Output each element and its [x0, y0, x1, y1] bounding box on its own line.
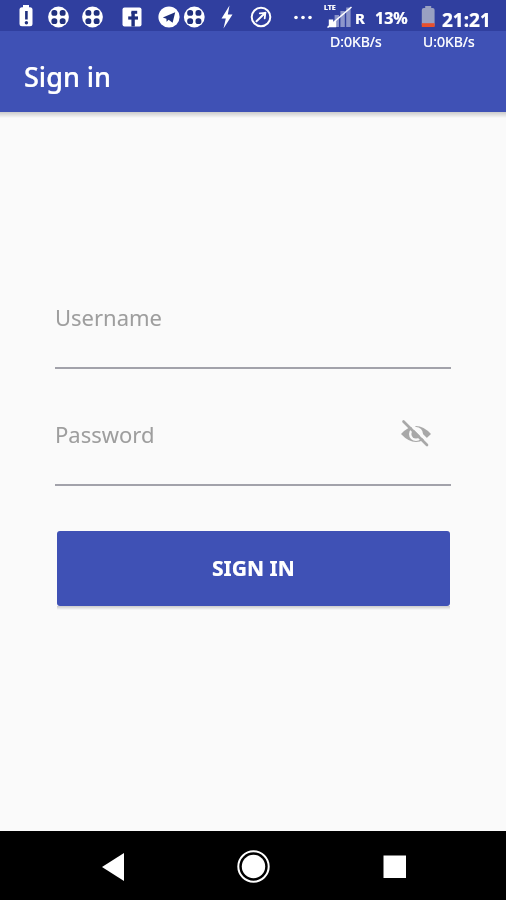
button[interactable]: [372, 844, 418, 888]
staticText: R: [355, 8, 365, 28]
staticText: U:0KB/s: [423, 32, 475, 51]
staticText: Username: [55, 302, 163, 332]
staticText: LTE: [324, 3, 336, 13]
button[interactable]: SIGN IN: [57, 531, 450, 606]
staticText: Sign in: [24, 58, 112, 95]
button[interactable]: [90, 844, 136, 888]
staticText: 21:21: [442, 7, 491, 33]
staticText: Password: [55, 419, 155, 449]
staticText: SIGN IN: [212, 554, 295, 583]
button[interactable]: [399, 418, 435, 450]
button[interactable]: Username: [55, 295, 451, 370]
staticText: 13%: [375, 7, 408, 29]
button[interactable]: Password: [55, 412, 451, 487]
button[interactable]: [231, 844, 277, 888]
staticText: D:0KB/s: [330, 32, 382, 51]
